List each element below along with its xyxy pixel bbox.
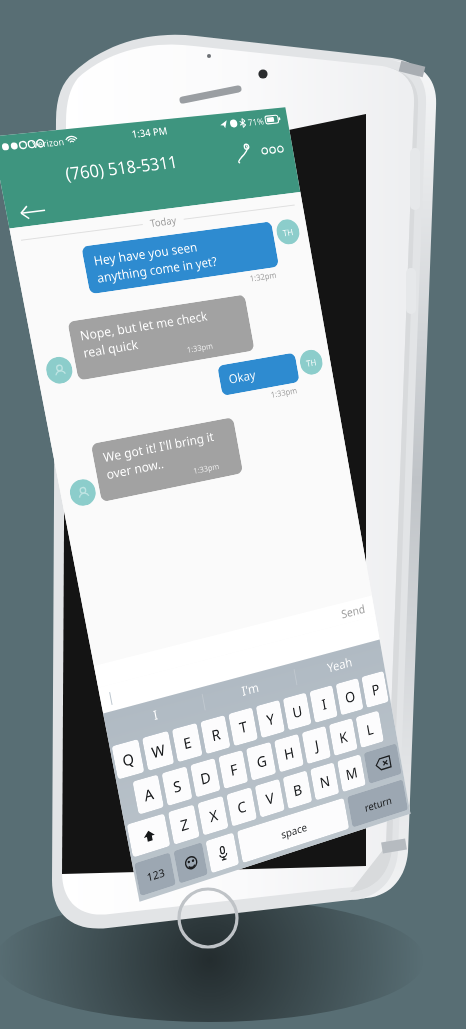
- button[interactable]: Emoji: [173, 842, 208, 884]
- staticText: Q: [120, 748, 136, 771]
- staticText: I'm: [240, 678, 261, 700]
- staticText: Nope, but let me check real quick: [78, 307, 212, 361]
- staticText: C: [235, 796, 248, 818]
- staticText: E: [181, 732, 193, 753]
- staticText: T: [237, 716, 249, 737]
- staticText: M: [344, 762, 359, 784]
- button[interactable]: U: [283, 692, 312, 731]
- staticText: D: [199, 767, 212, 789]
- button[interactable]: D: [190, 758, 221, 797]
- button[interactable]: R: [200, 715, 231, 754]
- staticText: 123: [145, 864, 166, 885]
- staticText: I: [152, 705, 160, 724]
- staticText: return: [364, 793, 393, 815]
- staticText: 1:34 PM: [130, 123, 169, 141]
- button[interactable]: M: [337, 754, 366, 792]
- staticText: F: [228, 759, 239, 780]
- staticText: 1:33pm: [186, 340, 214, 355]
- button[interactable]: 123: [134, 852, 176, 896]
- button[interactable]: Voice input: [205, 832, 239, 873]
- staticText: Z: [178, 814, 190, 835]
- staticText: We got it! I'll bring it over now..: [102, 428, 218, 482]
- staticText: K: [337, 727, 349, 747]
- staticText: W: [150, 739, 166, 762]
- staticText: 71%: [247, 115, 265, 128]
- button[interactable]: space: [237, 798, 349, 863]
- button[interactable]: I: [309, 685, 338, 723]
- button[interactable]: C: [226, 787, 257, 827]
- button[interactable]: K: [329, 718, 358, 756]
- button[interactable]: N: [310, 762, 339, 801]
- staticText: N: [318, 771, 331, 792]
- staticText: Hey have you seen anything come in yet?: [92, 236, 219, 286]
- button[interactable]: W: [142, 731, 174, 771]
- staticText: P: [370, 679, 381, 699]
- button[interactable]: J: [302, 726, 331, 764]
- button[interactable]: Nope, but let me check real quick: [67, 294, 255, 381]
- staticText: TH: [305, 356, 317, 369]
- button[interactable]: O: [335, 678, 363, 715]
- button[interactable]: Q: [111, 739, 144, 780]
- button[interactable]: Z: [168, 804, 200, 845]
- staticText: Okay: [227, 366, 257, 388]
- button[interactable]: Okay: [217, 352, 300, 396]
- staticText: J: [313, 735, 321, 755]
- button[interactable]: Backspace: [364, 743, 402, 784]
- staticText: Send: [340, 600, 367, 621]
- button[interactable]: Y: [256, 700, 285, 738]
- button[interactable]: X: [197, 796, 229, 836]
- button[interactable]: We got it! I'll bring it over now..: [91, 417, 243, 502]
- staticText: X: [208, 805, 219, 826]
- staticText: B: [291, 779, 303, 800]
- button[interactable]: V: [255, 779, 285, 818]
- button[interactable]: Hey have you seen anything come in yet?: [81, 221, 279, 294]
- button[interactable]: I: [103, 687, 206, 743]
- button[interactable]: A: [132, 774, 164, 815]
- button[interactable]: Back: [12, 168, 293, 227]
- staticText: O: [343, 686, 357, 707]
- button[interactable]: Shift: [127, 813, 170, 858]
- staticText: (760) 518-5311: [63, 150, 180, 185]
- button[interactable]: E: [172, 723, 203, 762]
- button[interactable]: S: [161, 766, 193, 806]
- staticText: U: [291, 701, 304, 722]
- staticText: Y: [265, 708, 276, 729]
- staticText: 1:33pm: [192, 460, 221, 476]
- staticText: L: [365, 719, 375, 739]
- staticText: Yeah: [326, 653, 354, 676]
- button[interactable]: [98, 616, 380, 713]
- staticText: Verizon: [31, 135, 65, 150]
- staticText: I: [320, 694, 328, 714]
- button[interactable]: L: [355, 710, 384, 748]
- button[interactable]: Call: [227, 137, 259, 169]
- button[interactable]: P: [361, 671, 389, 708]
- button[interactable]: F: [218, 750, 248, 789]
- staticText: H: [282, 742, 296, 764]
- button[interactable]: T: [228, 707, 258, 746]
- staticText: TH: [282, 225, 294, 238]
- staticText: space: [280, 819, 308, 841]
- staticText: G: [255, 750, 268, 772]
- staticText: A: [142, 783, 155, 805]
- button[interactable]: Send: [94, 596, 375, 688]
- button[interactable]: B: [283, 770, 312, 809]
- staticText: V: [264, 787, 276, 809]
- button[interactable]: G: [246, 742, 276, 781]
- button[interactable]: return: [347, 779, 408, 828]
- button[interactable]: Yeah: [293, 639, 384, 690]
- button[interactable]: I'm: [201, 663, 297, 716]
- staticText: Today: [149, 213, 177, 230]
- button[interactable]: More options: [257, 134, 288, 166]
- staticText: R: [210, 724, 222, 745]
- button[interactable]: H: [274, 734, 304, 772]
- staticText: 1:33pm: [270, 384, 299, 401]
- staticText: S: [171, 775, 183, 797]
- staticText: 1:32pm: [249, 269, 278, 285]
